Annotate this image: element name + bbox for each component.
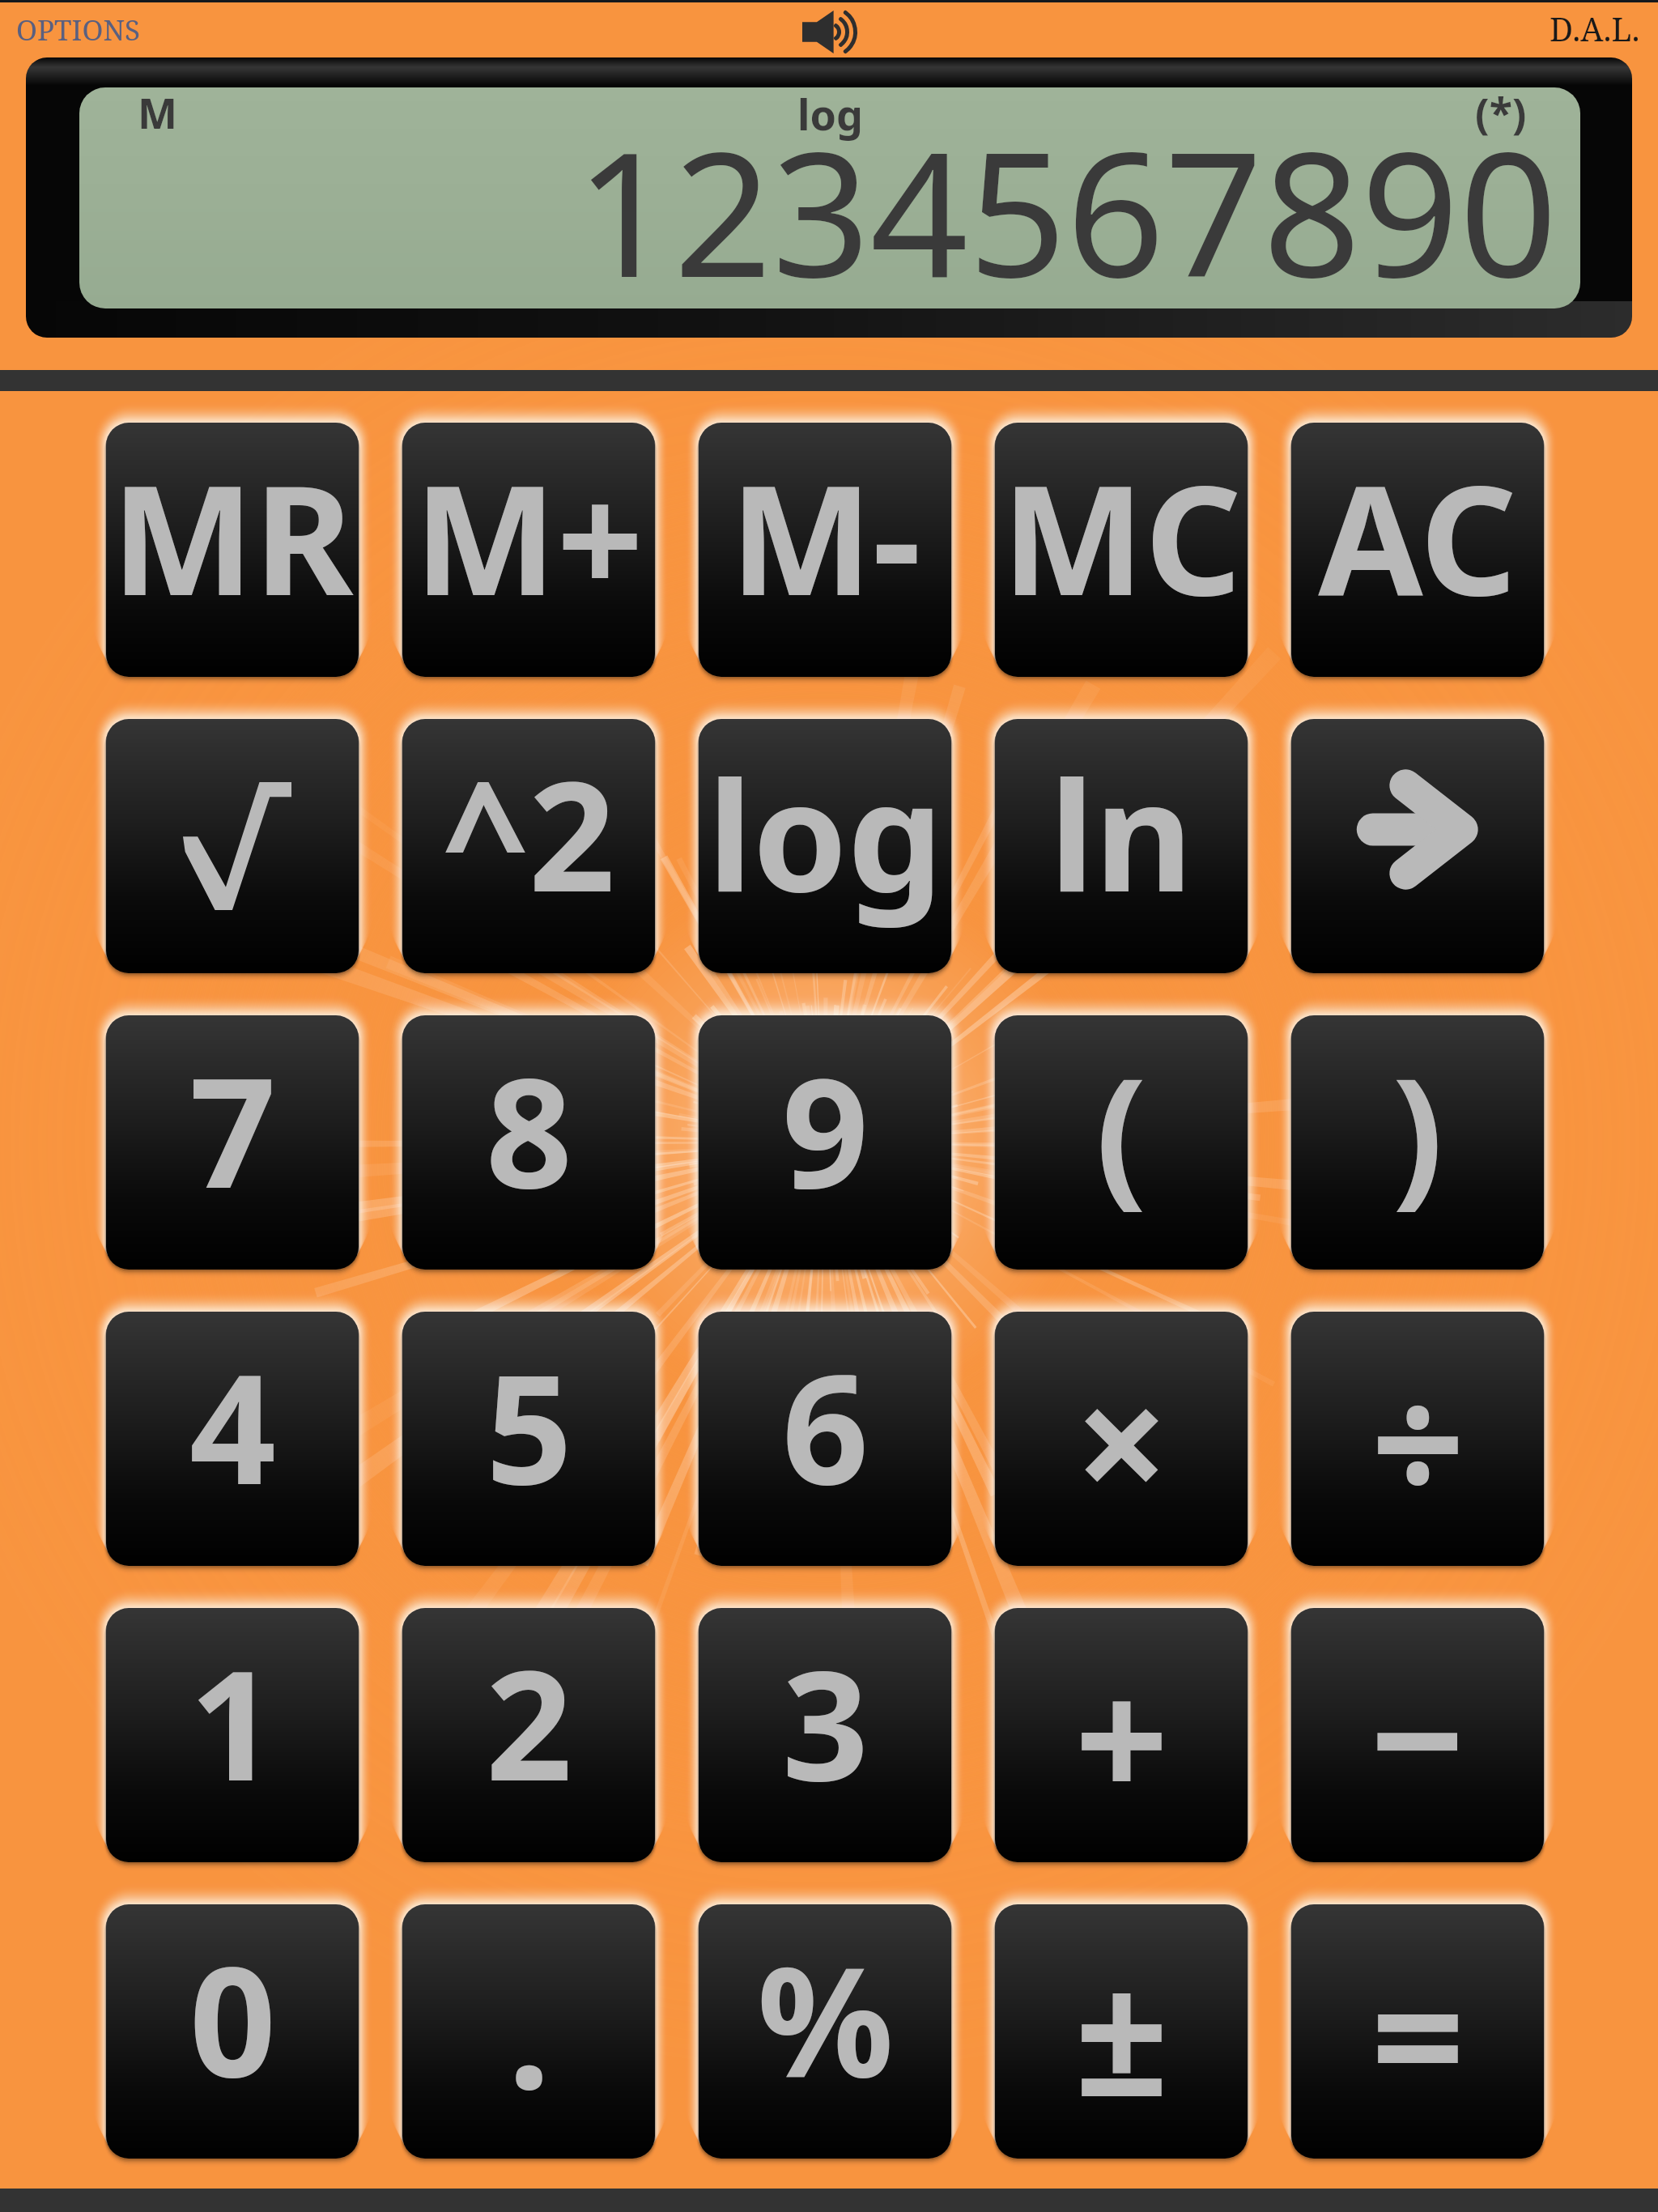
staticText: . (508, 1927, 551, 2133)
button[interactable]: log (699, 719, 951, 973)
staticText: = (1371, 1921, 1465, 2144)
staticText: MC (1001, 433, 1242, 640)
staticText: M- (729, 433, 921, 640)
button[interactable]: MR (106, 423, 359, 677)
button[interactable]: M- (699, 423, 951, 677)
staticText: ln (1049, 730, 1193, 936)
staticText: 6 (782, 1322, 869, 1529)
button[interactable]: Enter (1291, 719, 1544, 973)
staticText: AC (1318, 433, 1517, 640)
staticText: 1234567890 (576, 93, 1558, 308)
button[interactable]: × (995, 1312, 1248, 1566)
button[interactable]: 8 (402, 1015, 655, 1270)
staticText: ÷ (1371, 1328, 1465, 1551)
button[interactable]: 9 (699, 1015, 951, 1270)
button[interactable]: 6 (699, 1312, 951, 1566)
button[interactable]: 0 (106, 1904, 359, 2159)
button[interactable]: 2 (402, 1608, 655, 1862)
button[interactable]: 7 (106, 1015, 359, 1270)
staticText: 7 (189, 1026, 276, 1232)
button[interactable]: M+ (402, 423, 655, 677)
button[interactable]: ^2 (402, 719, 655, 973)
button[interactable]: Square root (106, 719, 359, 973)
button[interactable]: ) (1291, 1015, 1544, 1270)
staticText: 3 (782, 1619, 869, 1825)
button[interactable]: 5 (402, 1312, 655, 1566)
staticText: 1 (189, 1619, 276, 1825)
button[interactable]: AC (1291, 423, 1544, 677)
staticText: (*) (1475, 87, 1527, 141)
staticText: ± (1074, 1921, 1169, 2144)
button[interactable]: = (1291, 1904, 1544, 2159)
other: Square root (183, 782, 291, 910)
staticText: ( (1095, 1026, 1147, 1232)
staticText: 8 (486, 1026, 572, 1232)
staticText: log (797, 87, 863, 143)
button[interactable]: % (699, 1904, 951, 2159)
staticText: log (708, 730, 943, 936)
staticText: M (138, 87, 178, 141)
staticText: × (1074, 1328, 1169, 1551)
staticText: + (1074, 1624, 1169, 1848)
staticText: 4 (189, 1322, 276, 1529)
staticText: − (1370, 1624, 1465, 1848)
button[interactable]: 4 (106, 1312, 359, 1566)
button[interactable]: ± (995, 1904, 1248, 2159)
staticText: 5 (486, 1322, 572, 1529)
button[interactable]: + (995, 1608, 1248, 1862)
button[interactable]: ( (995, 1015, 1248, 1270)
staticText: M+ (414, 433, 644, 640)
button[interactable]: ÷ (1291, 1312, 1544, 1566)
staticText: MR (111, 433, 354, 640)
staticText: OPTIONS (16, 11, 141, 49)
staticText: 0 (189, 1915, 276, 2121)
button[interactable]: 1 (106, 1608, 359, 1862)
other: Enter (1356, 768, 1480, 891)
staticText: D.A.L. (1550, 6, 1640, 50)
staticText: ) (1392, 1026, 1443, 1232)
button[interactable]: Sound on (795, 4, 865, 59)
button[interactable]: MC (995, 423, 1248, 677)
staticText: 2 (486, 1619, 572, 1825)
button[interactable]: ln (995, 719, 1248, 973)
staticText: ^2 (442, 730, 615, 936)
staticText: % (757, 1915, 894, 2121)
button[interactable]: 3 (699, 1608, 951, 1862)
button[interactable]: . (402, 1904, 655, 2159)
button[interactable]: − (1291, 1608, 1544, 1862)
staticText: 9 (782, 1026, 869, 1232)
button[interactable]: OPTIONS (13, 7, 144, 53)
